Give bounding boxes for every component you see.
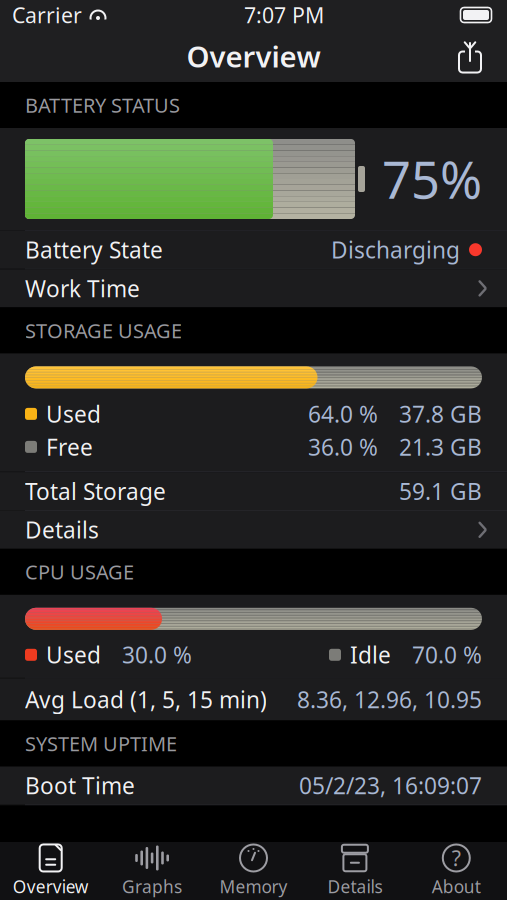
staticText: Boot Time [25,770,135,800]
button[interactable]: ? [406,844,507,898]
staticText: 70.0 % [412,640,482,670]
button[interactable]: Boot Time [0,766,507,804]
staticText: Idle [350,640,391,670]
staticText: Carrier [12,1,82,29]
button[interactable]: Work Time [0,269,507,307]
staticText: Free [46,432,93,462]
button[interactable]: Battery State [0,231,507,269]
staticText: Total Storage [25,476,166,506]
button[interactable]: Details [0,511,507,549]
staticText: ? [452,844,461,872]
button[interactable]: Share [445,33,495,79]
staticText: SYSTEM UPTIME [25,730,177,757]
staticText: Overview [13,875,89,898]
staticText: Used [46,399,101,429]
staticText: 59.1 GB [399,476,482,506]
staticText: Details [327,875,382,898]
button[interactable]: Details [304,844,406,898]
staticText: CPU USAGE [25,558,134,585]
staticText: 21.3 GB [399,432,482,462]
staticText: Used [46,640,101,670]
staticText: 64.0 % [308,399,378,429]
button[interactable]: Overview [0,844,101,898]
staticText: 05/2/23, 16:09:07 [299,770,482,800]
button[interactable]: Memory [203,844,304,898]
staticText: Details [25,515,99,545]
staticText: STORAGE USAGE [25,317,182,344]
staticText: 30.0 % [122,640,192,670]
staticText: Overview [186,36,320,75]
staticText: Graphs [122,875,182,898]
button[interactable]: Total Storage [0,472,507,510]
staticText: 7:07 PM [244,1,324,29]
staticText: Avg Load (1, 5, 15 min) [25,684,267,714]
staticText: Discharging [331,235,460,265]
staticText: Work Time [25,273,140,303]
staticText: 37.8 GB [399,399,482,429]
staticText: About [432,875,481,898]
staticText: Battery State [25,235,163,265]
staticText: BATTERY STATUS [25,92,180,118]
staticText: 75% [382,145,482,213]
button[interactable]: Avg Load (1, 5, 15 min) [0,678,507,720]
staticText: 8.36, 12.96, 10.95 [297,684,482,714]
staticText: 36.0 % [308,432,378,462]
button[interactable]: Graphs [101,844,203,898]
staticText: Memory [219,875,287,898]
